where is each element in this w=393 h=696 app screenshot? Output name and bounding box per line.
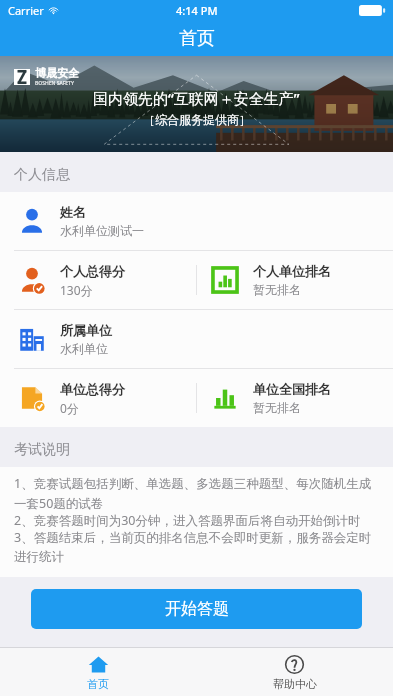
staticText: 2、竞赛答题时间为30分钟，进入答题界面后将自动开始倒计时 [14, 512, 361, 529]
staticText: 1、竞赛试题包括判断、单选题、多选题三种题型、每次随机生成一套50题的试卷 [14, 475, 379, 512]
other: National ranking [211, 384, 239, 412]
button[interactable]: 开始答题 [31, 589, 362, 629]
other: Help center [284, 654, 305, 675]
staticText: 3、答题结束后，当前页的排名信息不会即时更新，服务器会定时进行统计 [14, 529, 379, 565]
staticText: 国内领先的“互联网＋安全生产” [93, 88, 300, 108]
button[interactable]: National ranking [197, 369, 393, 427]
other: Home [88, 654, 109, 675]
staticText: 单位总得分 [60, 381, 125, 397]
staticText: 博晟安全 [35, 66, 79, 80]
button[interactable]: Organisation score [0, 369, 196, 427]
button[interactable]: Personal score [0, 251, 196, 309]
staticText: 考试说明 [14, 441, 70, 459]
other: Name [18, 207, 46, 235]
staticText: 个人信息 [14, 166, 70, 184]
staticText: 个人单位排名 [253, 263, 331, 279]
staticText: 暂无排名 [253, 400, 301, 415]
other: Organisation score [18, 384, 46, 412]
staticText: 4:14 PM [176, 3, 218, 18]
staticText: 姓名 [60, 204, 86, 220]
staticText: 130分 [60, 282, 93, 298]
button[interactable]: Unit ranking [197, 251, 393, 309]
other: Unit ranking [211, 266, 239, 294]
staticText: 帮助中心 [273, 677, 317, 691]
staticText: 暂无排名 [253, 282, 301, 297]
staticText: 首页 [179, 27, 215, 50]
staticText: 水利单位测试一 [60, 223, 144, 238]
button[interactable]: Help center [196, 648, 393, 696]
staticText: ［综合服务提供商］ [143, 112, 251, 127]
other: Personal score [18, 266, 46, 294]
staticText: BOSHEN SAFETY [35, 80, 74, 87]
button[interactable]: Home [0, 648, 196, 696]
staticText: 个人总得分 [60, 263, 125, 279]
button[interactable]: Organisation [0, 310, 393, 368]
staticText: 水利单位 [60, 341, 108, 356]
button[interactable]: Name [0, 192, 393, 250]
staticText: 首页 [87, 677, 109, 691]
other: Organisation [18, 325, 46, 353]
staticText: 所属单位 [60, 322, 112, 338]
staticText: Carrier [8, 3, 44, 18]
staticText: 开始答题 [165, 599, 229, 619]
staticText: 0分 [60, 400, 79, 416]
staticText: 单位全国排名 [253, 381, 331, 397]
